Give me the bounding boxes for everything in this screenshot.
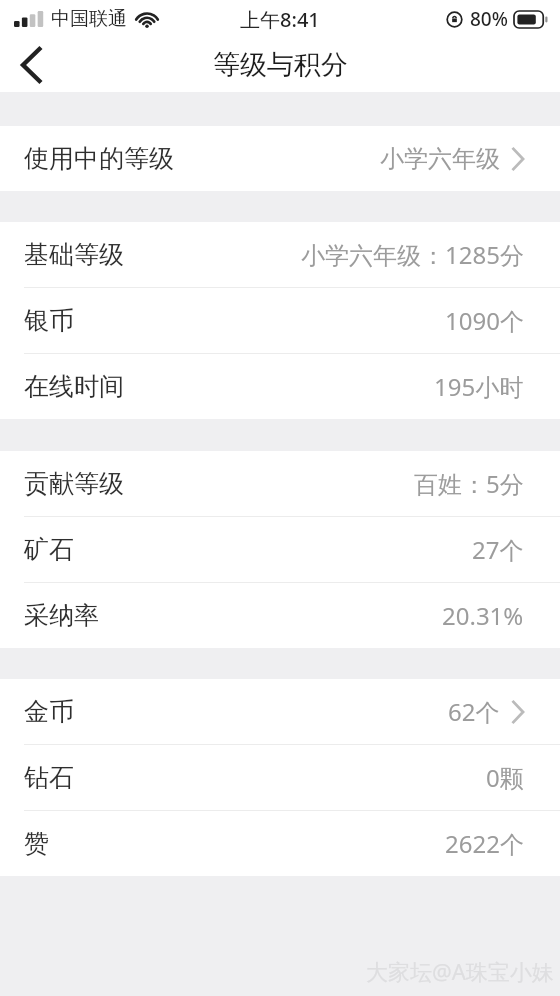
button[interactable]: 贡献等级 — [0, 451, 560, 516]
staticText: 20.31% — [442, 599, 524, 632]
staticText: 矿石 — [24, 534, 74, 565]
staticText: 小学六年级 — [380, 144, 500, 174]
staticText: 在线时间 — [24, 371, 124, 402]
button[interactable]: 金币 — [0, 679, 560, 744]
staticText: 等级与积分 — [213, 48, 348, 82]
staticText: 小学六年级：1285分 — [301, 238, 524, 271]
staticText: 中国联通 — [51, 7, 127, 31]
staticText: 银币 — [24, 305, 74, 336]
staticText: 赞 — [24, 828, 49, 859]
button[interactable]: Back — [0, 38, 62, 92]
staticText: 百姓：5分 — [414, 467, 524, 500]
button[interactable]: 矿石 — [0, 517, 560, 582]
staticText: 基础等级 — [24, 239, 124, 270]
staticText: 采纳率 — [24, 600, 99, 631]
staticText: 大家坛@A珠宝小妹 — [366, 956, 554, 986]
button[interactable]: 基础等级 — [0, 222, 560, 287]
button[interactable]: 在线时间 — [0, 354, 560, 419]
button[interactable]: 使用中的等级 — [0, 126, 560, 191]
button[interactable]: 钻石 — [0, 745, 560, 810]
staticText: 0颗 — [486, 761, 524, 794]
staticText: 钻石 — [24, 762, 74, 793]
staticText: 2622个 — [445, 827, 524, 860]
staticText: 62个 — [448, 695, 500, 728]
staticText: 上午8:41 — [240, 6, 320, 33]
staticText: 27个 — [472, 533, 524, 566]
button[interactable]: 赞 — [0, 811, 560, 876]
button[interactable]: 采纳率 — [0, 583, 560, 648]
staticText: 80% — [470, 6, 508, 32]
staticText: 1090个 — [445, 304, 524, 337]
staticText: 金币 — [24, 696, 74, 727]
staticText: 使用中的等级 — [24, 143, 174, 174]
staticText: 贡献等级 — [24, 468, 124, 499]
staticText: 195小时 — [434, 370, 524, 403]
button[interactable]: 银币 — [0, 288, 560, 353]
